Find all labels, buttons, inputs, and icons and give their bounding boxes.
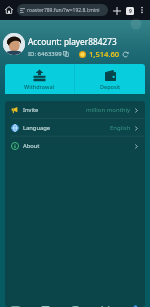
button[interactable]: Refresh balance bbox=[122, 51, 129, 58]
staticText: Withdrawal bbox=[24, 83, 55, 90]
staticText: About bbox=[23, 142, 40, 150]
staticText: Account: player884273 bbox=[28, 36, 117, 47]
staticText: 1,514.60 bbox=[89, 49, 120, 59]
staticText: roaster789.fun/?w=192.8.l:mini bbox=[27, 7, 100, 14]
button[interactable]: Home bbox=[2, 3, 16, 17]
staticText: ID: 6463399 bbox=[28, 50, 62, 58]
button[interactable]: Language bbox=[5, 119, 145, 137]
button[interactable]: Deposit bbox=[75, 64, 145, 94]
button[interactable]: Copy ID bbox=[63, 51, 69, 57]
staticText: 9 bbox=[129, 8, 132, 15]
staticText: Deposit bbox=[100, 83, 121, 90]
staticText: million monthly bbox=[86, 106, 131, 114]
button[interactable]: About bbox=[5, 137, 145, 155]
staticText: Invite bbox=[23, 106, 39, 114]
button[interactable]: Withdrawal bbox=[5, 64, 74, 94]
button[interactable]: New tab bbox=[110, 4, 123, 17]
button[interactable]: Invite bbox=[5, 101, 145, 119]
button[interactable]: More options bbox=[136, 4, 148, 16]
staticText: English bbox=[110, 124, 131, 132]
staticText: Language bbox=[23, 124, 51, 132]
button[interactable]: Tabs bbox=[123, 4, 136, 17]
button[interactable]: roaster789.fun/?w=192.8.l:mini bbox=[17, 4, 108, 16]
button[interactable]: Profile avatar bbox=[3, 33, 25, 55]
